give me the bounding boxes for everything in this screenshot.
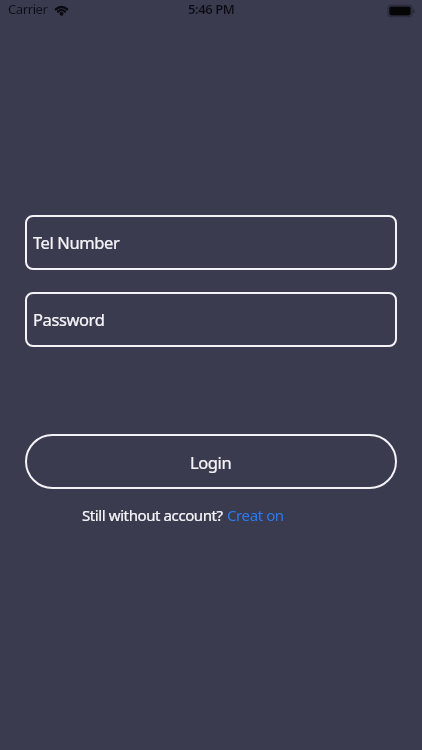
staticText: Tel Number	[33, 231, 120, 253]
staticText: Login	[190, 451, 232, 473]
staticText: Carrier	[8, 0, 48, 18]
button[interactable]: Tel Number	[25, 215, 397, 270]
staticText: 5:46 PM	[188, 0, 235, 18]
button[interactable]: Password	[25, 292, 397, 347]
button[interactable]: Login	[25, 434, 397, 489]
button[interactable]: Creat on	[227, 505, 284, 525]
staticText: Still without account?	[82, 505, 227, 525]
staticText: Password	[33, 308, 105, 330]
